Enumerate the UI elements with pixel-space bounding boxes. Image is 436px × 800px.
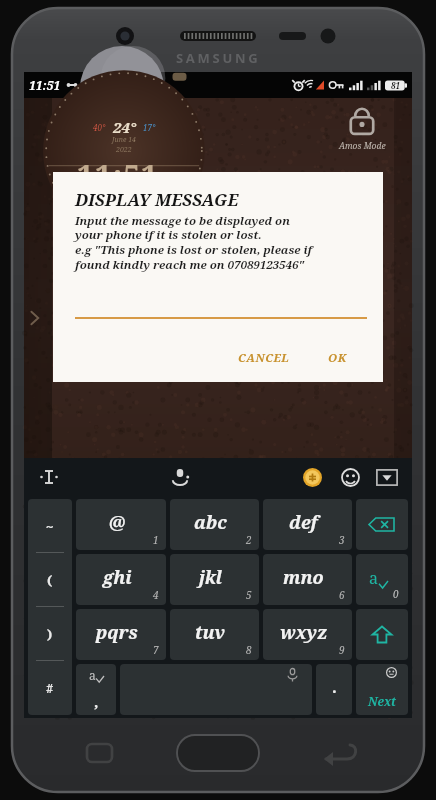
button[interactable]: mno <box>263 554 352 605</box>
button[interactable]: Cursor control <box>36 464 62 490</box>
staticText: 6 <box>339 588 345 602</box>
staticText: Input the message to be displayed on you… <box>75 213 313 273</box>
staticText: June 14 <box>112 135 136 145</box>
button[interactable]: Shift <box>356 609 408 660</box>
button[interactable]: Rewards <box>298 463 326 491</box>
button[interactable]: . <box>316 664 352 715</box>
button[interactable]: pqrs <box>76 609 166 660</box>
staticText: tuv <box>195 620 226 645</box>
staticText: , <box>94 691 99 711</box>
staticText: SAMSUNG <box>176 49 261 67</box>
button[interactable]: Emoji <box>336 463 364 491</box>
staticText: . <box>332 676 337 698</box>
staticText: P <box>83 76 92 94</box>
staticText: # <box>46 679 54 697</box>
button[interactable]: @ <box>76 499 166 550</box>
staticText: 11:51 <box>77 155 159 196</box>
staticText: 5 <box>246 588 252 602</box>
staticText: 2022 <box>116 145 132 155</box>
button[interactable]: Amos Mode lock <box>326 104 398 152</box>
staticText: 40° <box>93 122 106 133</box>
staticText: Amos Mode <box>339 140 386 152</box>
staticText: 81 <box>391 80 400 91</box>
staticText: 3 <box>339 533 345 547</box>
staticText: ( <box>47 571 53 589</box>
staticText: ghi <box>103 565 132 590</box>
staticText: 24° <box>113 117 136 137</box>
button[interactable]: Comma <box>76 664 116 715</box>
button[interactable]: def <box>263 499 352 550</box>
staticText: 9 <box>339 643 345 657</box>
staticText: 8 <box>246 643 252 657</box>
button[interactable]: Open panel <box>26 306 44 330</box>
staticText: jkl <box>199 565 223 590</box>
staticText: DISPLAY MESSAGE <box>75 188 239 211</box>
staticText: mno <box>283 565 324 590</box>
staticText: 2 <box>246 533 252 547</box>
button[interactable]: OK <box>320 346 355 370</box>
button[interactable]: wxyz <box>263 609 352 660</box>
staticText: wxyz <box>280 620 328 645</box>
staticText: abc <box>194 510 227 535</box>
button[interactable]: Backspace <box>356 499 408 550</box>
button[interactable]: Next <box>356 664 408 715</box>
button[interactable]: Auto correct, zero <box>356 554 408 605</box>
staticText: pqrs <box>96 620 138 645</box>
button[interactable]: # <box>28 661 72 715</box>
staticText: a <box>369 567 379 589</box>
button[interactable]: jkl <box>170 554 259 605</box>
button[interactable]: ) <box>28 607 72 661</box>
staticText: 4 <box>153 588 159 602</box>
staticText: a <box>89 667 96 683</box>
staticText: ~ <box>46 517 54 535</box>
button[interactable]: ghi <box>76 554 166 605</box>
staticText: Next <box>368 693 397 709</box>
button[interactable]: Space <box>120 664 312 715</box>
button[interactable] <box>75 299 367 319</box>
button[interactable]: tuv <box>170 609 259 660</box>
staticText: 11:51 <box>29 77 61 93</box>
staticText: ) <box>47 625 53 643</box>
staticText: def <box>289 510 318 535</box>
button[interactable]: ( <box>28 553 72 607</box>
button[interactable]: ~ <box>28 499 72 553</box>
staticText: @ <box>109 510 126 535</box>
staticText: 0 <box>393 587 399 601</box>
staticText: 7 <box>153 643 159 657</box>
staticText: 1 <box>153 533 159 547</box>
button[interactable]: Hide keyboard <box>372 464 402 490</box>
button[interactable]: abc <box>170 499 259 550</box>
button[interactable]: Handwriting <box>166 463 194 491</box>
staticText: 17° <box>143 122 156 133</box>
button[interactable]: CANCEL <box>230 346 298 370</box>
